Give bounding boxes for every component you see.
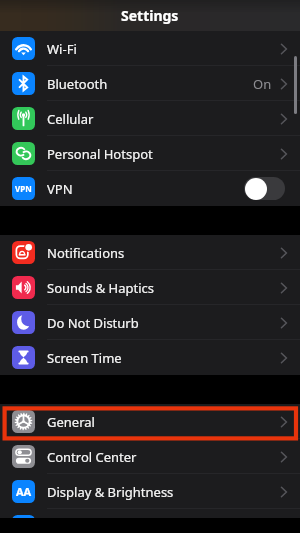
button[interactable]: Do Not Disturb	[0, 305, 300, 340]
staticText: On	[253, 75, 272, 93]
staticText: Cellular	[47, 110, 94, 128]
staticText: Sounds & Haptics	[47, 279, 155, 297]
staticText: Personal Hotspot	[47, 145, 153, 163]
staticText: Control Center	[47, 448, 137, 466]
staticText: Settings	[121, 6, 179, 25]
staticText: Bluetooth	[47, 75, 108, 93]
button[interactable]: Wi-Fi	[0, 31, 300, 66]
staticText: VPN	[47, 180, 73, 198]
button[interactable]: AA	[0, 474, 300, 509]
staticText: VPN	[15, 183, 32, 194]
staticText: Display & Brightness	[47, 483, 174, 501]
button[interactable]: VPN	[0, 171, 300, 206]
button[interactable]: General	[0, 404, 300, 439]
button[interactable]: Control Center	[0, 439, 300, 474]
button[interactable]: Notifications	[0, 235, 300, 270]
staticText: Wi-Fi	[47, 40, 77, 58]
staticText: Screen Time	[47, 349, 122, 367]
button[interactable]: Bluetooth	[0, 66, 300, 101]
button[interactable]: VPN toggle	[244, 177, 285, 200]
button[interactable]: Screen Time	[0, 340, 300, 375]
staticText: Notifications	[47, 244, 125, 262]
staticText: AA	[16, 484, 32, 499]
button[interactable]: Home Screen	[0, 509, 300, 518]
button[interactable]: Cellular	[0, 101, 300, 136]
button[interactable]: Personal Hotspot	[0, 136, 300, 171]
staticText: Do Not Disturb	[47, 314, 139, 332]
button[interactable]: Sounds & Haptics	[0, 270, 300, 305]
staticText: General	[47, 413, 95, 431]
